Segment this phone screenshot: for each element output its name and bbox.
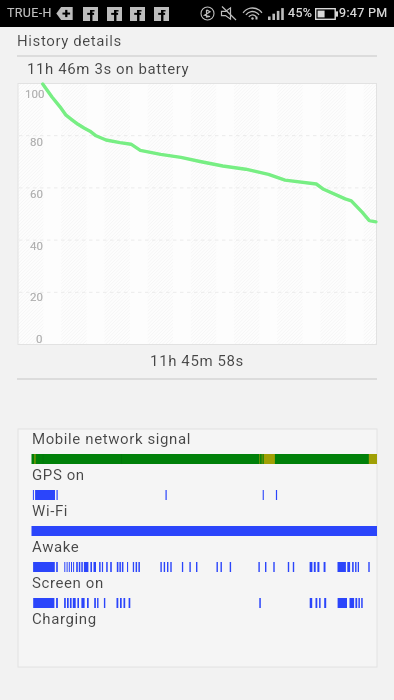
staticText: 9:47 PM bbox=[339, 5, 388, 20]
staticText: Mobile network signal bbox=[32, 430, 191, 448]
button[interactable]: Mobile network signal bbox=[18, 429, 377, 667]
staticText: 0 bbox=[36, 332, 43, 345]
staticText: 11h 46m 3s on battery bbox=[27, 60, 190, 78]
staticText: 80 bbox=[30, 135, 43, 148]
staticText: History details bbox=[17, 32, 122, 50]
staticText: 45% bbox=[288, 5, 313, 20]
staticText: Charging bbox=[32, 610, 97, 628]
staticText: GPS on bbox=[32, 466, 85, 484]
staticText: Awake bbox=[32, 538, 80, 556]
staticText: 60 bbox=[30, 187, 43, 200]
staticText: 40 bbox=[30, 239, 43, 252]
staticText: Screen on bbox=[32, 574, 104, 592]
staticText: Wi-Fi bbox=[32, 502, 69, 520]
staticText: TRUE-H bbox=[7, 5, 52, 20]
staticText: 11h 45m 58s bbox=[150, 352, 244, 370]
staticText: 20 bbox=[30, 290, 43, 303]
staticText: 100 bbox=[25, 87, 45, 100]
button[interactable]: History details bbox=[0, 27, 394, 56]
